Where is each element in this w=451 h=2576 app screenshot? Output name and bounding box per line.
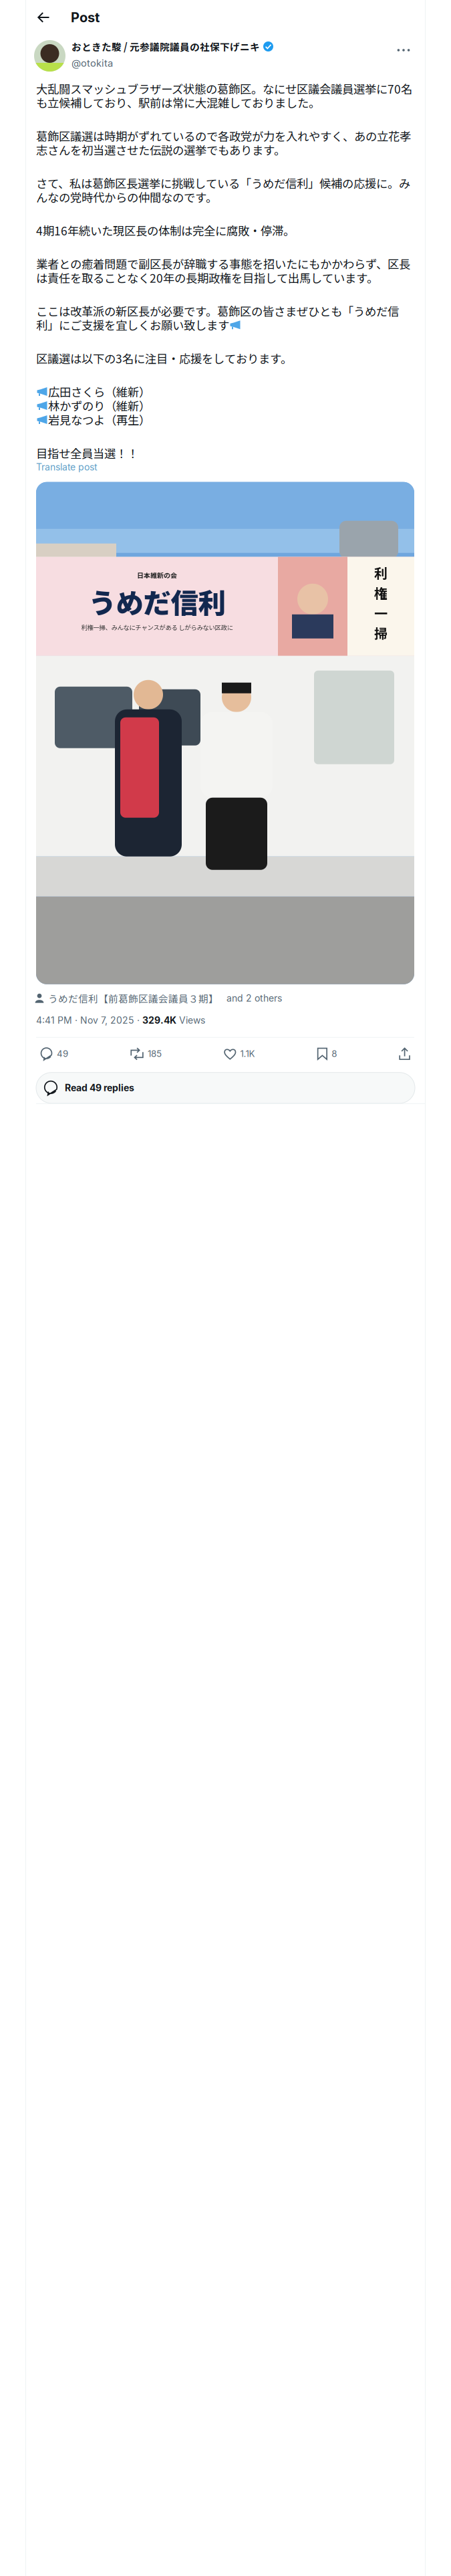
button[interactable]: Translate post <box>36 461 98 473</box>
staticText: 大乱闘スマッシュブラザーズ状態の葛飾区。なにせ区議会議員選挙に70名も立候補して… <box>36 82 412 109</box>
staticText: 4期16年続いた現区長の体制は完全に腐敗・停滞。 <box>36 223 295 237</box>
staticText: うめだ信利【前葛飾区議会議員３期】 <box>48 991 218 1005</box>
staticText: 葛飾区議選は時期がずれているので各政党が力を入れやすく、あの立花孝志さんを初当選… <box>36 129 411 157</box>
staticText: 掃 <box>374 623 388 642</box>
staticText: 329.4K <box>142 1015 176 1026</box>
button[interactable]: 8 <box>317 1042 337 1065</box>
staticText: さて、私は葛飾区長選挙に挑戦している「うめだ信利」候補の応援に。みんなの党時代か… <box>36 176 410 204</box>
staticText: 利権一掃、みんなにチャンスがある しがらみない区政に <box>81 623 233 632</box>
staticText: Views <box>176 1015 205 1026</box>
staticText: Translate post <box>36 461 98 473</box>
button[interactable]: 1.1K <box>224 1042 255 1065</box>
staticText: 目指せ全員当選！！ <box>36 446 138 460</box>
staticText: 8 <box>332 1048 337 1059</box>
staticText: 1.1K <box>240 1048 255 1059</box>
staticText: 185 <box>148 1048 162 1059</box>
staticText: うめだ信利 <box>89 581 225 621</box>
button[interactable]: Share <box>399 1042 410 1065</box>
staticText: 岩見なつよ（再生） <box>48 413 150 427</box>
staticText: 4:41 PM · Nov 7, 2025 · <box>36 1015 142 1026</box>
staticText: 49 <box>57 1048 68 1059</box>
staticText: 林かずのり（維新） <box>48 399 150 413</box>
staticText: ここは改革派の新区長が必要です。葛飾区の皆さまぜひとも「うめだ信 <box>36 304 399 318</box>
staticText: おときた駿 / 元参議院議員の社保下げニキ <box>71 39 260 54</box>
staticText: 業者との癒着問題で副区長が辞職する事態を招いたにもかかわらず、区長は責任を取るこ… <box>36 257 410 285</box>
staticText: 利」にご支援を宜しくお願い致します <box>36 318 229 332</box>
staticText: 一 <box>374 603 388 622</box>
staticText: @otokita <box>71 57 113 69</box>
staticText: and 2 others <box>227 993 282 1004</box>
staticText: 利 <box>374 563 388 582</box>
staticText: 権 <box>374 583 388 602</box>
staticText: 広田さくら（維新） <box>48 385 150 399</box>
button[interactable]: Back <box>34 0 53 35</box>
button[interactable]: Read 49 replies <box>36 1073 415 1103</box>
staticText: 区議選は以下の3名に注目・応援をしております。 <box>36 351 292 365</box>
button[interactable]: More options <box>392 40 415 60</box>
staticText: Post <box>71 9 100 25</box>
staticText: Read 49 replies <box>65 1082 134 1094</box>
staticText: 日本維新の会 <box>137 570 177 580</box>
button[interactable]: 49 <box>40 1042 68 1065</box>
button[interactable]: 185 <box>130 1042 162 1065</box>
